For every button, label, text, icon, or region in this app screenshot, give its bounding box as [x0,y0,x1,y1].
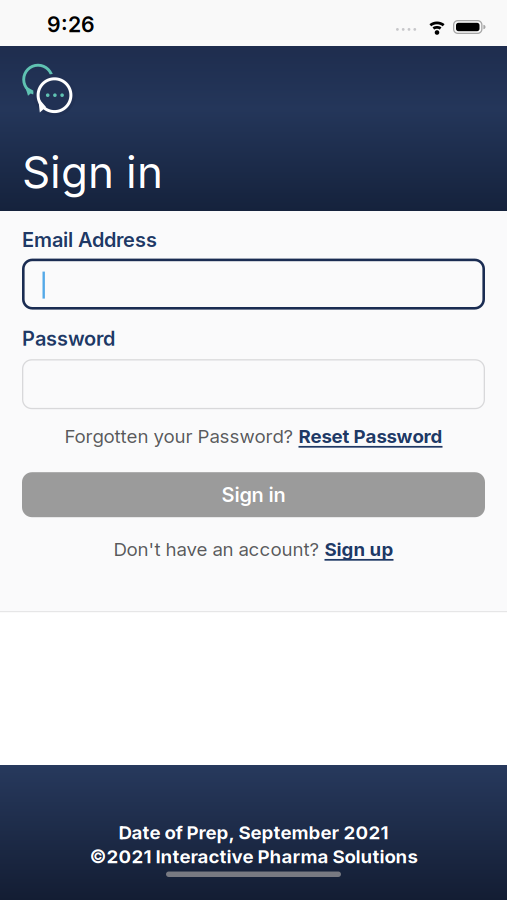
staticText: 9:26 [47,12,95,37]
staticText: Don't have an account? [113,538,324,560]
staticText: Email Address [22,228,157,252]
staticText: Sign up [324,538,393,560]
staticText: Reset Password [298,425,442,447]
staticText: Date of Prep, September 2021 [118,821,388,843]
staticText: Forgotten your Password? [64,425,298,447]
staticText: ©2021 Interactive Pharma Solutions [89,845,417,867]
staticText: Password [22,327,115,350]
staticText: Sign in [221,483,285,506]
staticText: Sign in [22,146,163,198]
